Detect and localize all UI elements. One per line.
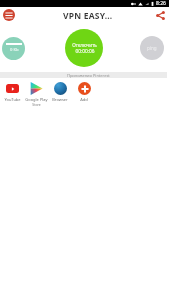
staticText: ping (147, 45, 157, 51)
button[interactable]: Open navigation menu (3, 9, 15, 21)
button[interactable]: YouTube (0, 81, 24, 102)
button[interactable]: Ping (140, 36, 164, 60)
staticText: Приложения Pinterest (67, 73, 110, 78)
button[interactable]: Google Play (24, 81, 48, 107)
staticText: Store (32, 102, 41, 107)
button[interactable]: Add (72, 81, 96, 102)
staticText: Google Play (25, 97, 48, 102)
staticText: 8:26 (156, 0, 166, 7)
staticText: Отключить (72, 42, 97, 48)
button[interactable]: Отключить (65, 29, 103, 67)
button[interactable]: Browser (48, 81, 72, 102)
staticText: VPN EASY... (63, 10, 113, 22)
staticText: 00:00:06 (75, 48, 95, 55)
staticText: YouTube (4, 97, 21, 102)
staticText: Add (80, 97, 88, 102)
button[interactable]: Share (154, 9, 166, 21)
staticText: Browser (52, 97, 68, 102)
staticText: 0 Kb (10, 47, 19, 53)
button[interactable]: 0 Kb (2, 37, 25, 60)
